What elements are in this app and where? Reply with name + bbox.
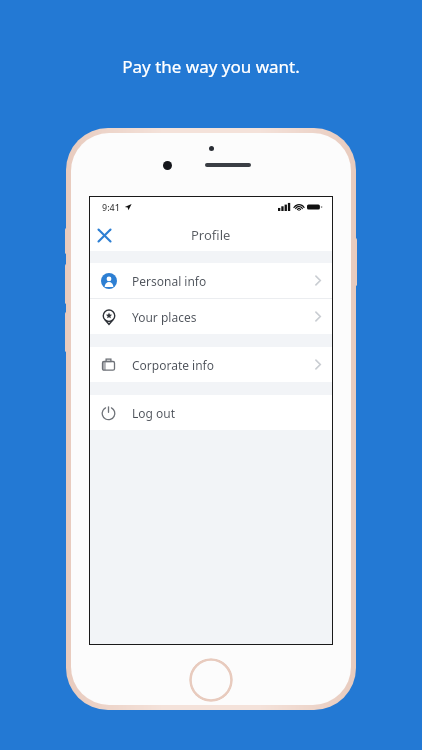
staticText: 9:41 [102, 201, 120, 213]
staticText: Corporate info [132, 357, 215, 373]
button[interactable]: Personal info [89, 263, 333, 298]
button[interactable]: Close [89, 220, 119, 250]
staticText: Personal info [132, 273, 207, 289]
staticText: Log out [132, 405, 176, 421]
button[interactable]: Corporate info [89, 347, 333, 382]
staticText: Pay the way you want. [122, 55, 300, 78]
staticText: Your places [132, 309, 197, 325]
staticText: Profile [191, 226, 231, 244]
button[interactable]: Your places [89, 299, 333, 334]
button[interactable]: Log out [89, 395, 333, 430]
